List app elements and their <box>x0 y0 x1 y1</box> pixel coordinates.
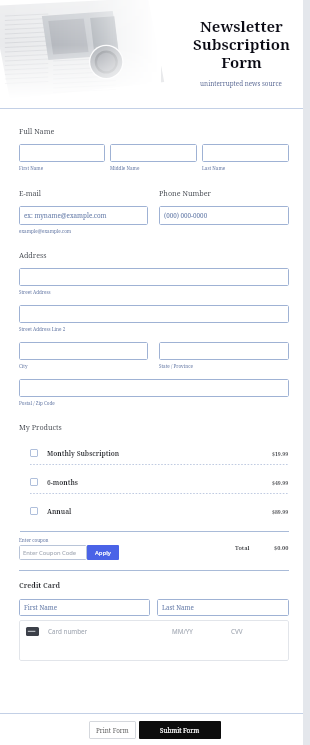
staticText: Full Name <box>19 126 55 136</box>
staticText: Credit Card <box>19 581 61 591</box>
button[interactable] <box>110 144 197 162</box>
button[interactable]: ex: myname@example.com <box>19 206 148 225</box>
staticText: 6-months <box>47 478 78 487</box>
button[interactable]: First Name <box>19 599 150 616</box>
staticText: $49.99 <box>272 479 289 486</box>
staticText: Newsletter Subscription Form <box>193 16 290 73</box>
button[interactable] <box>202 144 289 162</box>
button[interactable]: Card type <box>19 620 289 661</box>
staticText: Annual <box>47 507 72 516</box>
staticText: Street Address Line 2 <box>19 326 66 332</box>
staticText: Middle Name <box>110 165 140 171</box>
staticText: example@example.com <box>19 228 72 234</box>
staticText: First Name <box>19 165 44 171</box>
button[interactable]: Print Form <box>89 721 136 739</box>
staticText: Submit Form <box>160 726 200 735</box>
staticText: City <box>19 363 28 369</box>
button[interactable] <box>19 379 289 397</box>
staticText: Last Name <box>202 165 226 171</box>
staticText: Address <box>19 250 47 260</box>
button[interactable]: 6-months <box>19 471 289 493</box>
staticText: Enter coupon <box>19 537 49 543</box>
staticText: Last Name <box>162 603 194 612</box>
staticText: (000) 000-0000 <box>164 211 208 220</box>
button[interactable] <box>19 144 105 162</box>
staticText: Enter Coupon Code <box>23 549 76 557</box>
button[interactable] <box>19 268 289 286</box>
staticText: MM/YY <box>172 627 193 636</box>
button[interactable]: Apply <box>87 545 119 560</box>
button[interactable]: Monthly Subscription <box>19 442 289 464</box>
button[interactable] <box>159 342 289 360</box>
staticText: ex: myname@example.com <box>24 211 107 220</box>
staticText: Card number <box>48 627 88 636</box>
button[interactable] <box>19 342 148 360</box>
staticText: First Name <box>24 603 58 612</box>
staticText: E-mail <box>19 188 42 198</box>
staticText: uninterrupted news source <box>200 79 282 88</box>
staticText: Print Form <box>96 726 129 735</box>
staticText: Monthly Subscription <box>47 449 120 458</box>
staticText: State / Province <box>159 363 193 369</box>
staticText: CVV <box>231 627 243 636</box>
button[interactable]: Last Name <box>157 599 289 616</box>
staticText: Phone Number <box>159 188 211 198</box>
staticText: Apply <box>95 549 111 557</box>
staticText: $0.00 <box>274 544 289 552</box>
staticText: My Products <box>19 422 62 432</box>
staticText: Street Address <box>19 289 51 295</box>
staticText: Postal / Zip Code <box>19 400 55 406</box>
staticText: $19.99 <box>272 450 289 457</box>
staticText: Total <box>235 544 250 552</box>
button[interactable]: Submit Form <box>139 721 221 739</box>
staticText: $89.99 <box>272 508 289 515</box>
button[interactable] <box>19 305 289 323</box>
button[interactable]: Enter Coupon Code <box>19 545 87 560</box>
button[interactable]: (000) 000-0000 <box>159 206 289 225</box>
other: Card type <box>26 627 39 636</box>
button[interactable]: Annual <box>19 500 289 522</box>
